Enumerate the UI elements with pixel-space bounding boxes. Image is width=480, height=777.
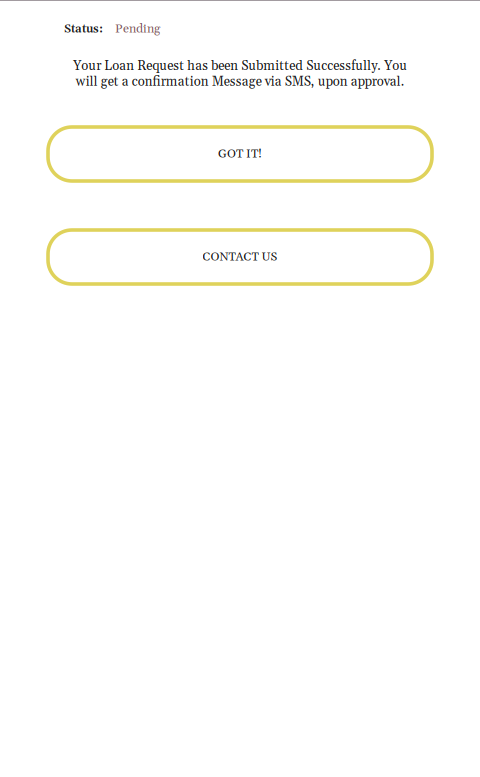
staticText: CONTACT US xyxy=(202,249,277,265)
staticText: Status: xyxy=(64,22,103,36)
button[interactable]: CONTACT US xyxy=(48,230,432,284)
staticText: GOT IT! xyxy=(218,146,262,162)
staticText: Pending xyxy=(115,21,160,37)
staticText: Your Loan Request has been Submitted Suc… xyxy=(73,58,407,90)
button[interactable]: GOT IT! xyxy=(48,127,432,181)
